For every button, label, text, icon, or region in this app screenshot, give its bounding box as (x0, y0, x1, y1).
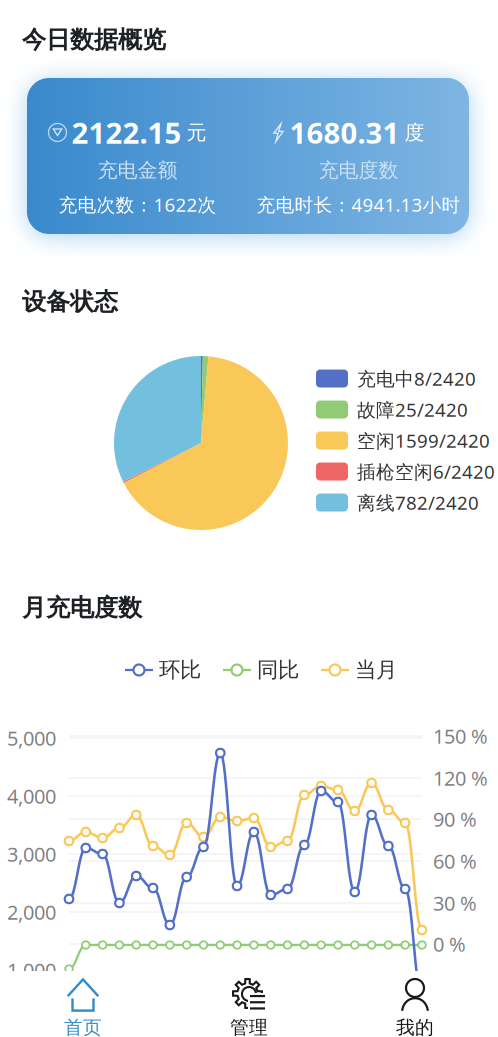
staticText: 2122.15 (71, 113, 181, 152)
staticText: 5,000 (7, 725, 56, 751)
staticText: 120 % (433, 765, 488, 791)
staticText: 度 (404, 120, 424, 145)
staticText: 空闲1599/2420 (357, 428, 490, 453)
staticText: 3,000 (7, 841, 56, 867)
staticText: 我的 (396, 1016, 434, 1037)
staticText: 充电次数：1622次 (58, 192, 216, 217)
staticText: 150 % (433, 723, 488, 749)
staticText: 元 (186, 120, 206, 145)
button[interactable]: 我的 (332, 971, 498, 1037)
staticText: 管理 (230, 1016, 268, 1037)
staticText: 充电度数 (318, 158, 398, 183)
staticText: 2,000 (7, 899, 56, 925)
staticText: 30 % (433, 890, 477, 916)
staticText: 今日数据概览 (22, 25, 166, 54)
staticText: 充电时长：4941.13小时 (256, 192, 460, 217)
button[interactable]: 首页 (0, 971, 166, 1037)
staticText: 4,000 (7, 783, 56, 809)
staticText: 60 % (433, 848, 477, 874)
button[interactable]: 管理 (166, 971, 332, 1037)
staticText: 0 % (433, 931, 466, 957)
staticText: 故障25/2420 (357, 397, 468, 422)
staticText: 插枪空闲6/2420 (357, 459, 495, 484)
staticText: 当月 (355, 657, 397, 683)
staticText: 1680.31 (289, 113, 399, 152)
staticText: 充电金额 (97, 158, 177, 183)
staticText: 1,000 (7, 957, 56, 983)
staticText: 设备状态 (22, 287, 118, 316)
staticText: 首页 (64, 1016, 102, 1037)
staticText: 离线782/2420 (357, 490, 479, 515)
staticText: 90 % (433, 806, 477, 832)
staticText: 充电中8/2420 (357, 366, 476, 391)
staticText: 同比 (257, 657, 299, 683)
staticText: 月充电度数 (22, 593, 142, 622)
staticText: 环比 (159, 657, 201, 683)
